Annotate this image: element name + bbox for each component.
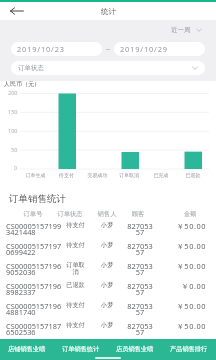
button[interactable]: 2019/10/23 [11,42,102,56]
staticText: 小梦 [96,241,118,249]
staticText: 小梦 [96,281,118,289]
staticText: 交易成功 [82,172,113,178]
button[interactable]: 近一周 [171,26,203,34]
staticText: ￥50.00 [166,221,206,231]
staticText: 订单取 消 [66,261,85,275]
staticText: 小梦 [96,321,118,329]
button[interactable]: CS00005157196 9052036 [0,261,216,281]
staticText: 订单生成 [20,172,51,178]
button[interactable]: 店员销售业绩 [108,339,162,360]
staticText: 人民币（元） [4,80,40,88]
staticText: 已完成 [145,172,177,178]
button[interactable]: CS00005157187 6502536 [0,321,216,341]
staticText: 50 [11,146,18,153]
staticText: 2019/10/23 [17,44,65,54]
staticText: 小梦 [96,261,118,269]
staticText: 100 [8,127,18,134]
button[interactable]: 订单销售统计 [54,339,108,360]
staticText: 销售人 [91,210,123,218]
button[interactable]: CS00005157196 4881740 [0,301,216,321]
button[interactable]: CS00005157196 8982337 [0,281,216,301]
staticText: 827053 57 [125,261,155,277]
staticText: 待支付 [66,301,85,309]
staticText: ￥50.00 [166,321,206,331]
button[interactable]: 店铺销售业绩 [0,339,54,360]
staticText: 已退款 [177,172,209,178]
button[interactable]: 2019/10/29 [114,42,205,56]
staticText: ￥50.00 [166,241,206,251]
button[interactable]: Back [8,2,26,20]
staticText: 0 [14,164,18,171]
staticText: 827053 57 [125,221,155,237]
staticText: CS00005157187 6502536 [6,321,64,337]
staticText: 产品销售排行 [170,345,208,353]
staticText: 店铺销售业绩 [8,345,46,353]
staticText: 近一周 [171,26,191,34]
button[interactable]: 产品销售排行 [162,339,216,360]
staticText: CS00005157196 4881740 [6,301,64,317]
staticText: 827053 57 [125,321,155,337]
staticText: 200 [8,89,18,96]
staticText: CS00005157196 8982337 [6,281,64,297]
staticText: 订单销售统计 [9,193,66,205]
staticText: 827053 57 [125,301,155,317]
button[interactable]: CS00005157197 0699422 [0,241,216,261]
staticText: ￥0.00 [166,281,206,291]
staticText: 订单状态 [53,210,87,218]
staticText: 已退款 [66,281,85,289]
button[interactable]: 订单状态 [11,61,205,75]
staticText: 订单状态 [18,64,44,72]
staticText: 店员销售业绩 [116,345,154,353]
staticText: 订单号 [13,210,53,218]
staticText: 827053 57 [125,281,155,297]
staticText: 待支付 [51,172,82,178]
staticText: 金额 [177,210,203,218]
staticText: CS00005157197 0699422 [6,241,64,257]
staticText: 待支付 [66,321,85,329]
staticText: 2019/10/29 [120,44,168,54]
staticText: 待支付 [66,241,85,249]
staticText: 顾客 [125,210,151,218]
staticText: 统计 [101,7,116,16]
staticText: 订单销售统计 [62,345,100,353]
staticText: 小梦 [96,221,118,229]
staticText: CS00005157196 9052036 [6,261,64,277]
staticText: 订单取消 [113,172,145,178]
staticText: CS00005157199 3421448 [6,221,64,237]
staticText: 827053 57 [125,241,155,257]
staticText: ￥50.00 [166,261,206,271]
staticText: 小梦 [96,301,118,309]
staticText: ￥50.00 [166,301,206,311]
staticText: 150 [8,108,18,115]
button[interactable]: CS00005157199 3421448 [0,221,216,241]
staticText: 待支付 [66,221,85,229]
